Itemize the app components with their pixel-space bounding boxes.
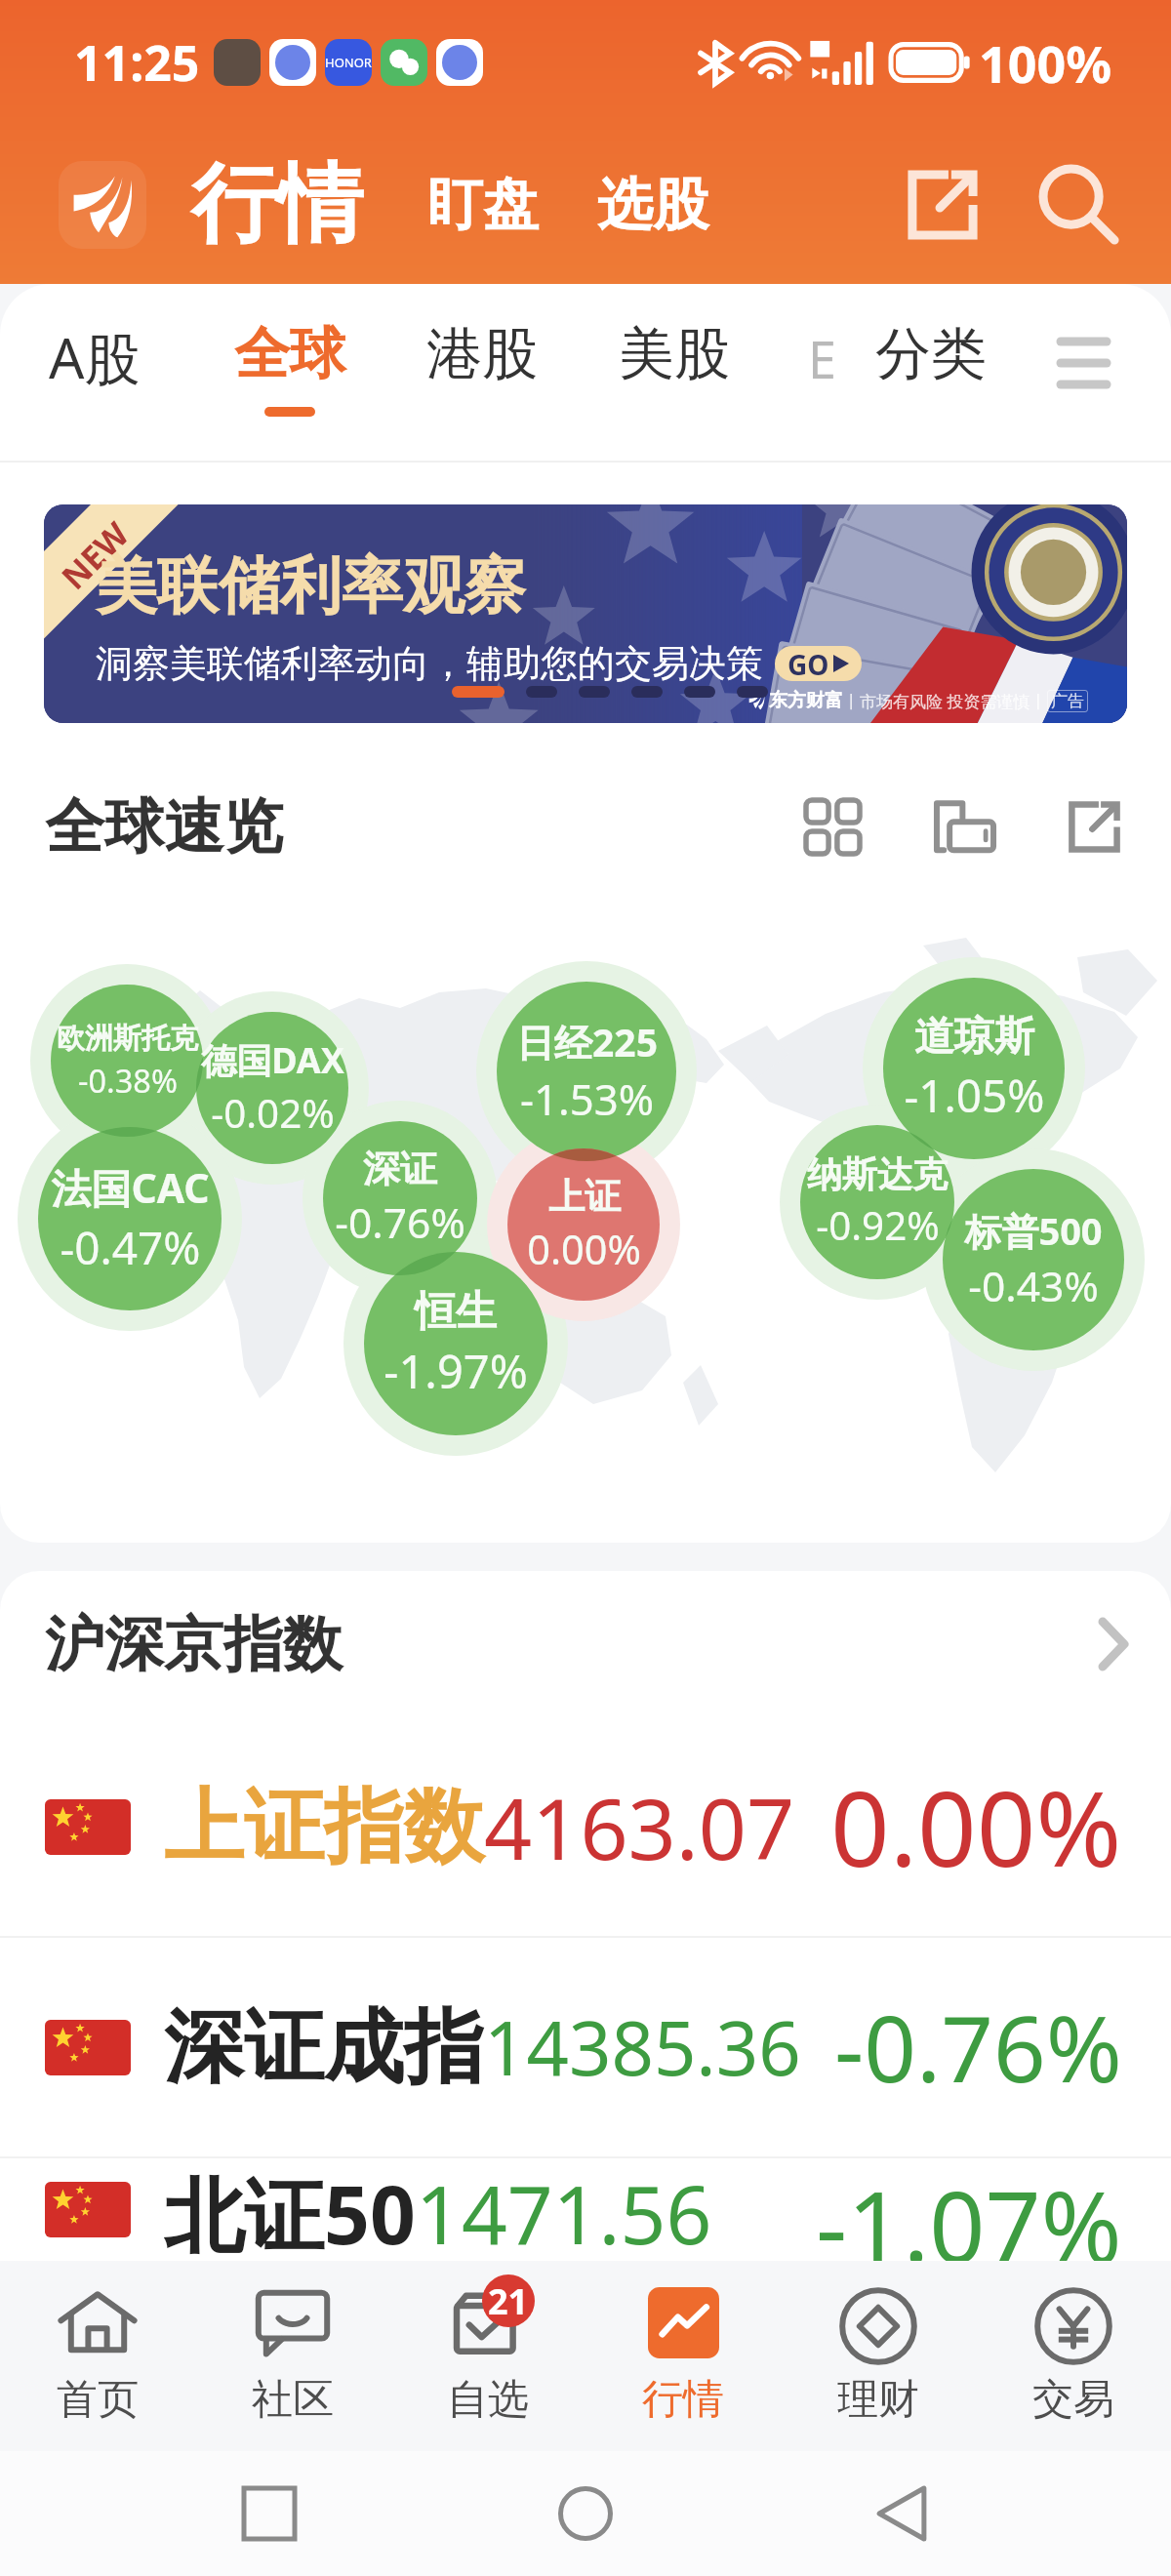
button[interactable]: 上证 xyxy=(507,1148,660,1301)
staticText: -0.47% xyxy=(60,1217,201,1278)
staticText: 0.00% xyxy=(830,1756,1122,1897)
staticText: 深证成指 xyxy=(164,1997,484,2098)
button[interactable]: Home xyxy=(539,2467,632,2560)
button[interactable]: 理财 xyxy=(781,2261,976,2451)
staticText: -0.76% xyxy=(335,1194,465,1251)
staticText: 全球 xyxy=(234,319,345,389)
staticText: 交易 xyxy=(1032,2374,1114,2426)
button[interactable]: 日经225 xyxy=(497,982,676,1161)
staticText: 日经225 xyxy=(516,1016,658,1067)
staticText: 标普500 xyxy=(964,1205,1103,1256)
staticText: 行情 xyxy=(191,150,363,259)
button[interactable]: 上证指数 xyxy=(0,1717,1171,1936)
button[interactable]: 沪深京指数 xyxy=(0,1571,1171,1717)
staticText: 广告 xyxy=(1051,691,1084,711)
staticText: -0.02% xyxy=(211,1086,335,1140)
button[interactable]: 德国DAX xyxy=(196,1012,348,1164)
staticText: A股 xyxy=(49,319,141,395)
staticText: 100% xyxy=(979,28,1112,98)
button[interactable]: 港股 xyxy=(426,319,538,417)
button[interactable]: Grid view xyxy=(790,785,874,868)
staticText: 沪深京指数 xyxy=(45,1607,343,1682)
button[interactable]: Rotate screen xyxy=(923,785,1007,868)
staticText: 上证指数 xyxy=(164,1777,484,1877)
staticText: 道琼斯 xyxy=(914,1012,1034,1063)
staticText: 行情 xyxy=(642,2374,724,2426)
staticText: 理财 xyxy=(837,2374,919,2426)
button[interactable]: 选股 xyxy=(597,170,708,240)
button[interactable]: 首页 xyxy=(0,2261,195,2451)
staticText: -1.07% xyxy=(816,2158,1122,2261)
staticText: -0.92% xyxy=(816,1198,940,1252)
button[interactable]: 21 xyxy=(390,2261,585,2451)
button[interactable]: 道琼斯 xyxy=(883,978,1065,1159)
staticText: E xyxy=(808,324,836,393)
button[interactable]: Back xyxy=(855,2467,949,2560)
button[interactable]: 社区 xyxy=(195,2261,390,2451)
button[interactable]: Search xyxy=(1029,154,1130,256)
staticText: 纳斯达克 xyxy=(807,1152,948,1196)
button[interactable]: More tabs xyxy=(1040,284,1126,461)
staticText: 恒生 xyxy=(415,1286,497,1338)
staticText: 社区 xyxy=(252,2374,334,2426)
button[interactable]: Share xyxy=(1052,785,1136,868)
staticText: 美联储利率观察 xyxy=(96,547,526,624)
staticText: 法国CAC xyxy=(51,1160,210,1215)
staticText: -1.53% xyxy=(520,1069,654,1127)
button[interactable]: 分类 xyxy=(875,319,987,417)
button[interactable]: 盯盘 xyxy=(427,170,539,240)
button[interactable]: Share xyxy=(894,156,991,254)
button[interactable]: 深证成指 xyxy=(0,1938,1171,2156)
button[interactable]: 欧洲斯托克 xyxy=(51,985,203,1137)
button[interactable]: 标普500 xyxy=(943,1169,1124,1350)
staticText: -1.97% xyxy=(384,1340,528,1402)
staticText: -0.76% xyxy=(834,1985,1122,2110)
staticText: 首页 xyxy=(57,2374,139,2426)
staticText: 21 xyxy=(488,2277,529,2325)
staticText: 丨市场有风险 投资需谨慎丨 xyxy=(843,690,1047,712)
button[interactable]: 美股 xyxy=(619,319,730,417)
staticText: 港股 xyxy=(426,319,538,389)
button[interactable]: 交易 xyxy=(976,2261,1171,2451)
staticText: 1471.56 xyxy=(416,2158,712,2261)
staticText: 深证 xyxy=(363,1146,437,1192)
button[interactable]: Recents xyxy=(222,2467,316,2560)
staticText: 东方财富 xyxy=(769,689,843,712)
staticText: 自选 xyxy=(447,2374,529,2426)
staticText: 上证 xyxy=(548,1174,621,1220)
button[interactable]: 恒生 xyxy=(364,1252,547,1435)
staticText: 0.00% xyxy=(527,1222,641,1276)
button[interactable]: 全球 xyxy=(234,319,345,417)
staticText: 4163.07 xyxy=(484,1770,795,1884)
staticText: 洞察美联储利率动向，辅助您的交易决策 xyxy=(96,640,763,687)
staticText: 欧洲斯托克 xyxy=(57,1021,198,1057)
button[interactable]: NEW xyxy=(44,504,1127,723)
button[interactable]: A股 xyxy=(49,319,141,423)
staticText: 北证50 xyxy=(164,2158,416,2261)
button[interactable]: 深证 xyxy=(323,1121,477,1275)
staticText: HONOR xyxy=(325,54,372,71)
button[interactable]: 北证50 xyxy=(0,2158,1171,2261)
staticText: 全球速览 xyxy=(45,789,283,865)
staticText: GO xyxy=(787,646,829,681)
button[interactable]: 纳斯达克 xyxy=(800,1125,954,1279)
button[interactable]: 行情 xyxy=(585,2261,781,2451)
staticText: -1.05% xyxy=(904,1065,1045,1126)
staticText: NEW xyxy=(51,512,138,599)
staticText: 美股 xyxy=(619,319,730,389)
staticText: 14385.36 xyxy=(484,1996,801,2098)
staticText: -0.38% xyxy=(78,1059,178,1102)
staticText: 分类 xyxy=(875,319,987,389)
staticText: 11:25 xyxy=(74,29,200,96)
button[interactable]: 法国CAC xyxy=(38,1127,222,1310)
staticText: -0.43% xyxy=(968,1258,1099,1314)
staticText: 德国DAX xyxy=(201,1036,344,1084)
